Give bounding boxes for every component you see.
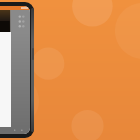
button[interactable]: Side panel [11, 32, 30, 127]
button[interactable]: Featured photo [0, 10, 30, 32]
button[interactable]: Navigation bar [0, 127, 30, 134]
button[interactable]: Phone preview [0, 2, 34, 138]
